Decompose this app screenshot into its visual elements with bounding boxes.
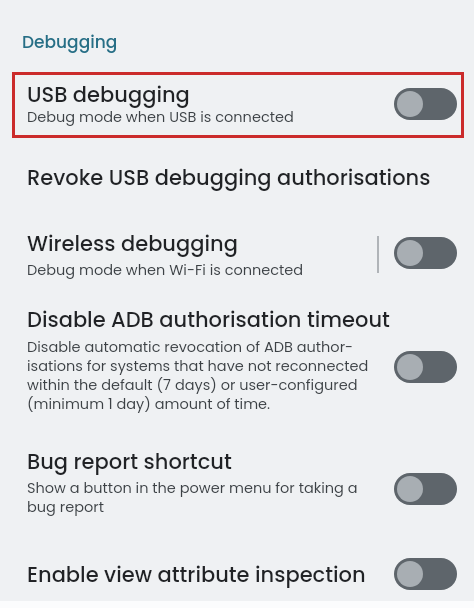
button[interactable]: Enable view attribute inspection bbox=[7, 545, 467, 600]
button[interactable] bbox=[394, 237, 457, 269]
staticText: Wireless debugging bbox=[27, 229, 238, 258]
staticText: Bug report shortcut bbox=[27, 447, 232, 476]
button[interactable] bbox=[394, 473, 457, 505]
button[interactable] bbox=[394, 351, 457, 383]
staticText: USB debugging bbox=[27, 80, 190, 109]
staticText: Disable ADB authorisation timeout bbox=[27, 305, 390, 334]
staticText: Revoke USB debugging authorisations bbox=[27, 163, 431, 192]
button[interactable] bbox=[394, 88, 457, 120]
button[interactable] bbox=[394, 558, 457, 590]
staticText: Debug mode when Wi-Fi is connected bbox=[27, 260, 304, 280]
staticText: Debugging bbox=[22, 30, 118, 54]
button[interactable]: Disable ADB authorisation timeout bbox=[7, 296, 467, 420]
button[interactable]: USB debugging bbox=[12, 72, 464, 138]
button[interactable]: Bug report shortcut bbox=[7, 440, 467, 522]
button[interactable]: Wireless debugging bbox=[7, 222, 467, 284]
button[interactable]: Revoke USB debugging authorisations bbox=[7, 155, 467, 205]
staticText: Show a button in the power menu for taki… bbox=[27, 478, 358, 517]
staticText: Debug mode when USB is connected bbox=[27, 107, 294, 127]
staticText: Disable automatic revocation of ADB auth… bbox=[27, 337, 369, 414]
staticText: Enable view attribute inspection bbox=[27, 560, 366, 589]
